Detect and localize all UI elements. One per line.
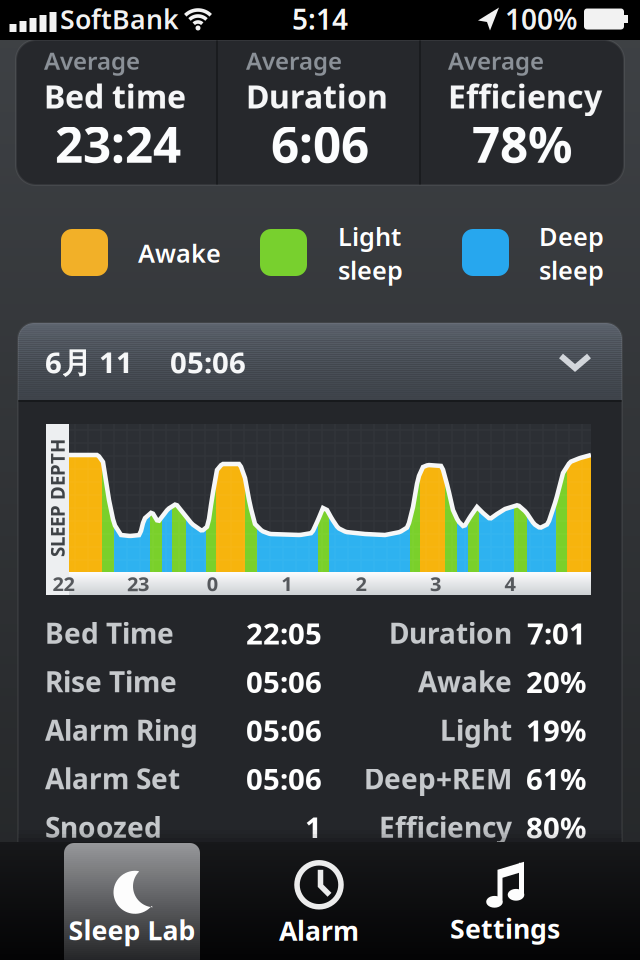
- button[interactable]: Alarm: [234, 850, 404, 960]
- staticText: 6月 11: [45, 342, 133, 381]
- staticText: 7:01: [527, 613, 586, 652]
- staticText: 80%: [526, 807, 586, 846]
- staticText: sleep: [539, 253, 604, 287]
- staticText: Alarm Ring: [45, 711, 198, 749]
- staticText: Alarm: [279, 913, 359, 948]
- staticText: sleep: [338, 253, 403, 287]
- staticText: 05:06: [170, 342, 246, 381]
- staticText: 22:05: [246, 613, 322, 652]
- staticText: 19%: [526, 710, 586, 749]
- staticText: Light: [338, 219, 401, 253]
- staticText: Efficiency: [448, 75, 602, 117]
- staticText: Efficiency: [379, 808, 512, 846]
- staticText: Alarm Set: [45, 760, 180, 797]
- staticText: 78%: [472, 111, 572, 176]
- staticText: 05:06: [246, 662, 322, 701]
- staticText: 1: [281, 570, 292, 597]
- staticText: 100%: [505, 0, 578, 38]
- staticText: 23: [127, 570, 149, 597]
- staticText: 23:24: [55, 111, 181, 176]
- staticText: 05:06: [246, 759, 322, 798]
- staticText: Duration: [246, 75, 388, 117]
- staticText: 61%: [526, 759, 586, 798]
- staticText: Awake: [138, 236, 221, 270]
- staticText: Settings: [450, 911, 560, 946]
- staticText: Bed Time: [45, 614, 174, 652]
- button[interactable]: Settings: [420, 848, 590, 958]
- button[interactable]: 6月 11: [18, 323, 622, 400]
- staticText: 22: [52, 570, 74, 597]
- staticText: 4: [504, 570, 515, 597]
- staticText: Average: [246, 45, 342, 76]
- staticText: Sleep Lab: [68, 912, 195, 948]
- staticText: SoftBank: [60, 1, 179, 37]
- staticText: 3: [430, 570, 441, 597]
- staticText: 2: [356, 570, 367, 597]
- staticText: 6:06: [271, 111, 369, 176]
- staticText: Rise Time: [45, 663, 177, 700]
- staticText: 5:14: [292, 0, 348, 38]
- staticText: Average: [448, 45, 544, 76]
- staticText: 05:06: [246, 710, 322, 749]
- button[interactable]: Sleep Lab: [64, 843, 200, 960]
- staticText: Snoozed: [45, 808, 162, 846]
- staticText: Deep: [539, 219, 604, 253]
- staticText: Duration: [389, 614, 512, 652]
- staticText: 20%: [526, 662, 586, 701]
- staticText: Light: [440, 711, 512, 749]
- staticText: Awake: [418, 663, 512, 700]
- staticText: Bed time: [44, 75, 186, 117]
- staticText: 0: [207, 570, 218, 597]
- staticText: Deep+REM: [364, 760, 512, 797]
- staticText: SLEEP DEPTH: [0, 486, 116, 510]
- staticText: Average: [44, 45, 140, 76]
- staticText: 1: [305, 807, 322, 846]
